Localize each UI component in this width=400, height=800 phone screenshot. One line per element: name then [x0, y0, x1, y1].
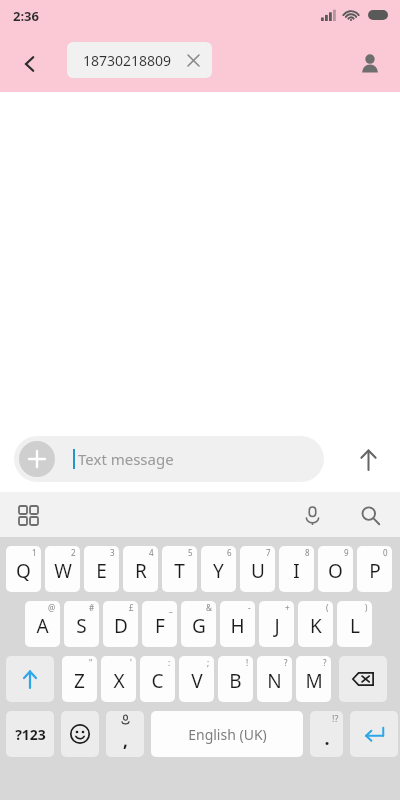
staticText: ": [89, 657, 93, 668]
staticText: !?: [332, 712, 339, 724]
staticText: 18730218809: [83, 51, 172, 70]
button[interactable]: ,: [106, 711, 144, 757]
button[interactable]: Add attachment: [14, 436, 324, 482]
staticText: C: [151, 668, 164, 694]
staticText: 8: [305, 547, 310, 558]
staticText: M: [305, 668, 323, 694]
button[interactable]: Backspace: [339, 656, 387, 702]
button[interactable]: 1: [6, 546, 41, 592]
button[interactable]: ?123: [6, 711, 54, 757]
staticText: 0: [383, 547, 388, 558]
staticText: 4: [149, 547, 154, 558]
staticText: B: [229, 668, 242, 694]
staticText: !: [246, 657, 249, 668]
button[interactable]: ': [101, 656, 136, 702]
button[interactable]: 2: [45, 546, 80, 592]
staticText: Z: [74, 668, 85, 694]
staticText: Q: [16, 558, 31, 584]
button[interactable]: &: [181, 601, 216, 647]
button[interactable]: Back: [10, 44, 50, 84]
button[interactable]: Emoji: [61, 711, 99, 757]
staticText: English (UK): [188, 725, 267, 744]
button[interactable]: ;: [179, 656, 214, 702]
staticText: &: [206, 602, 212, 613]
button[interactable]: @: [25, 601, 60, 647]
button[interactable]: 3: [84, 546, 119, 592]
button[interactable]: Send: [346, 437, 390, 481]
staticText: V: [191, 668, 203, 694]
button[interactable]: !: [218, 656, 253, 702]
staticText: ': [130, 657, 132, 668]
button[interactable]: #: [64, 601, 99, 647]
staticText: -: [248, 602, 251, 613]
button[interactable]: 0: [357, 546, 392, 592]
button[interactable]: _: [142, 601, 177, 647]
staticText: £: [129, 602, 134, 613]
button[interactable]: ": [62, 656, 97, 702]
button[interactable]: 9: [318, 546, 353, 592]
button[interactable]: £: [103, 601, 138, 647]
staticText: D: [114, 613, 128, 639]
staticText: S: [76, 613, 87, 639]
button[interactable]: ): [337, 601, 372, 647]
button[interactable]: Shift: [6, 656, 54, 702]
staticText: 2: [71, 547, 76, 558]
staticText: 7: [266, 547, 271, 558]
staticText: 9: [344, 547, 349, 558]
staticText: :: [168, 657, 171, 668]
button[interactable]: Contact: [350, 44, 390, 84]
button[interactable]: English (UK): [151, 711, 303, 757]
button[interactable]: -: [220, 601, 255, 647]
button[interactable]: 18730218809: [67, 42, 212, 78]
button[interactable]: ?: [257, 656, 292, 702]
staticText: F: [155, 613, 165, 639]
button[interactable]: Remove recipient: [184, 51, 202, 69]
staticText: X: [113, 668, 125, 694]
staticText: ;: [207, 657, 210, 668]
staticText: U: [251, 558, 265, 584]
staticText: ?: [284, 657, 288, 668]
staticText: 1: [32, 547, 37, 558]
button[interactable]: 4: [123, 546, 158, 592]
staticText: A: [36, 613, 49, 639]
staticText: Text message: [78, 449, 174, 469]
staticText: #: [89, 602, 95, 613]
button[interactable]: 8: [279, 546, 314, 592]
button[interactable]: (: [298, 601, 333, 647]
staticText: 3: [110, 547, 115, 558]
button[interactable]: Search: [350, 495, 390, 535]
staticText: T: [174, 558, 185, 584]
staticText: K: [310, 613, 322, 639]
staticText: E: [96, 558, 107, 584]
staticText: H: [230, 613, 245, 639]
staticText: (: [326, 602, 329, 613]
staticText: ?: [323, 657, 327, 668]
staticText: 6: [227, 547, 232, 558]
button[interactable]: Add attachment: [19, 441, 55, 477]
button[interactable]: :: [140, 656, 175, 702]
button[interactable]: !?: [310, 711, 343, 757]
staticText: W: [54, 558, 72, 584]
staticText: ): [365, 602, 368, 613]
staticText: 2:36: [13, 7, 39, 25]
staticText: R: [135, 558, 147, 584]
staticText: _: [169, 602, 173, 613]
button[interactable]: 7: [240, 546, 275, 592]
button[interactable]: Voice input: [292, 495, 332, 535]
button[interactable]: Keyboard apps: [8, 495, 48, 535]
staticText: ,: [123, 729, 128, 752]
staticText: G: [192, 613, 206, 639]
button[interactable]: ?: [296, 656, 331, 702]
button[interactable]: 5: [162, 546, 197, 592]
staticText: L: [350, 613, 360, 639]
staticText: O: [328, 558, 343, 584]
staticText: Y: [213, 558, 224, 584]
staticText: .: [324, 726, 330, 751]
button[interactable]: 6: [201, 546, 236, 592]
staticText: I: [293, 558, 300, 584]
staticText: J: [274, 613, 280, 639]
button[interactable]: Enter: [350, 711, 398, 757]
button[interactable]: +: [259, 601, 294, 647]
staticText: 5: [188, 547, 193, 558]
staticText: +: [285, 602, 290, 613]
